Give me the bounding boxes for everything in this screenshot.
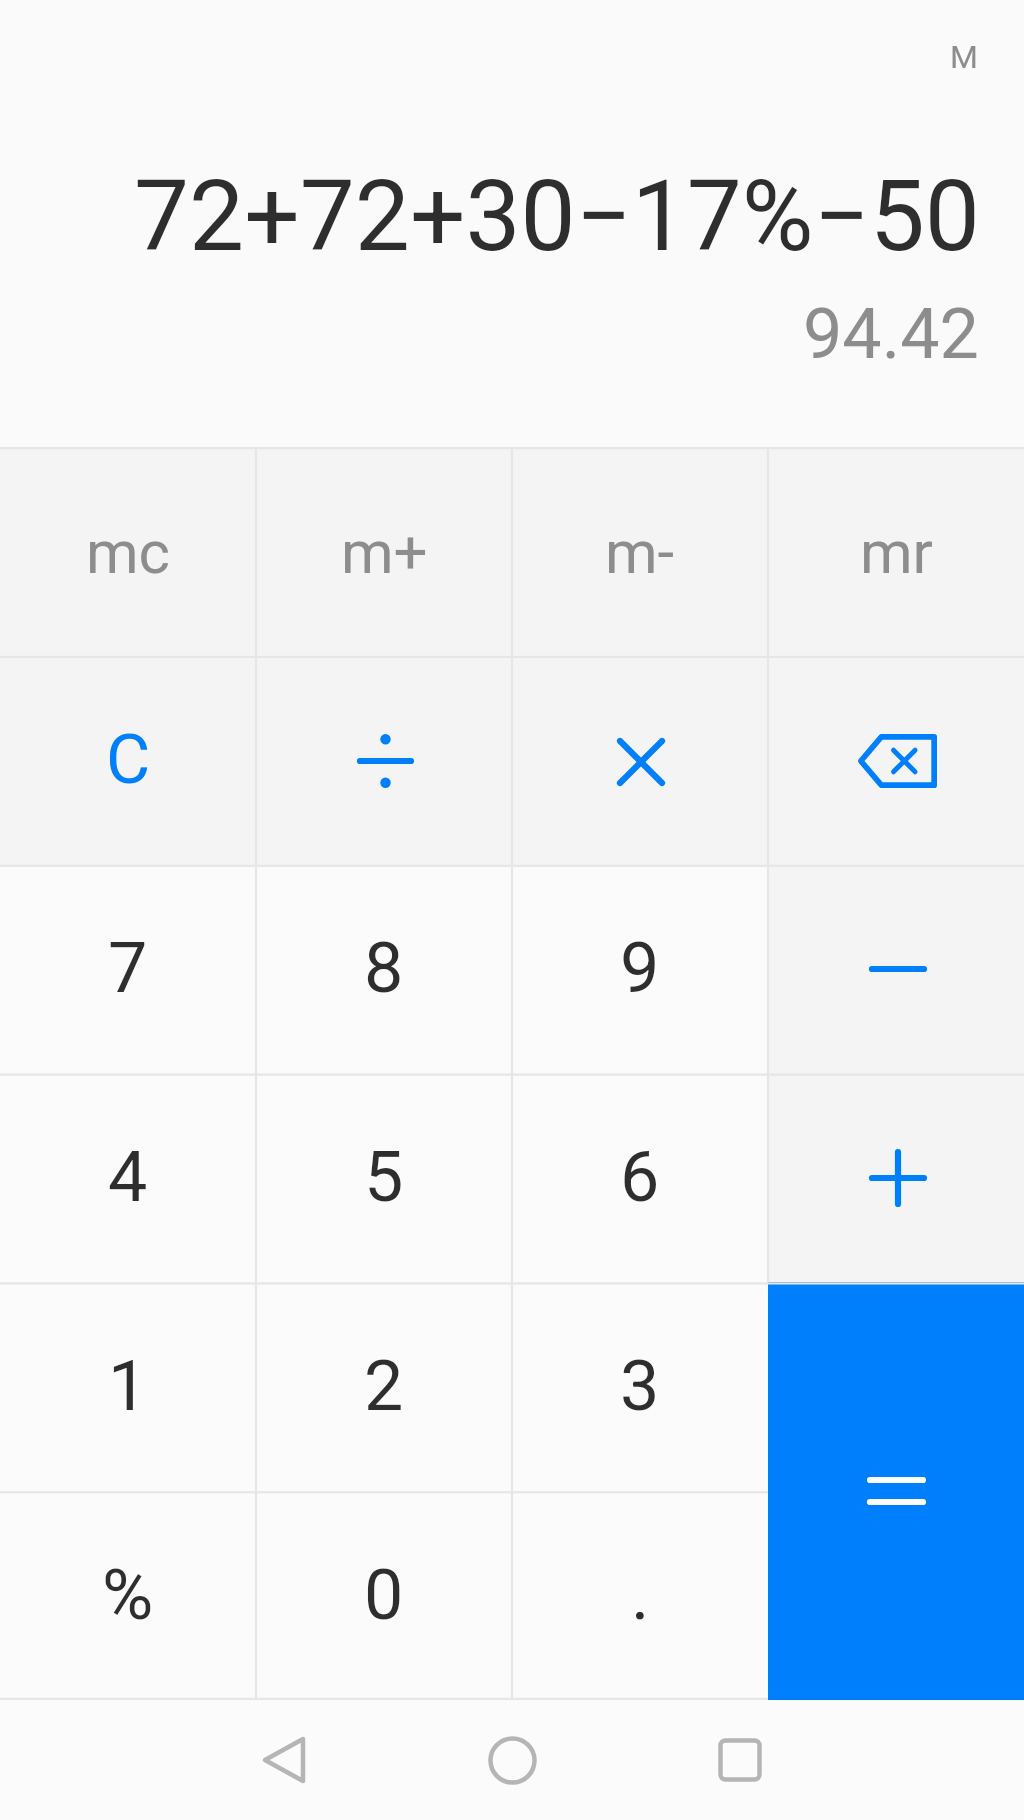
staticText: 8 — [364, 927, 404, 1009]
staticText: M — [950, 38, 978, 76]
button[interactable]: Divide — [256, 656, 512, 865]
button[interactable]: m- — [512, 447, 768, 656]
button[interactable]: 6 — [512, 1073, 768, 1282]
button[interactable]: mc — [0, 447, 256, 656]
staticText: 5 — [364, 1136, 404, 1218]
staticText: . — [631, 1554, 650, 1636]
button[interactable]: Recents — [626, 1700, 854, 1820]
staticText: mc — [86, 517, 171, 587]
button[interactable]: 8 — [256, 865, 512, 1073]
button[interactable]: 1 — [0, 1282, 256, 1491]
button[interactable]: 2 — [256, 1282, 512, 1491]
staticText: % — [102, 1554, 154, 1636]
button[interactable]: 7 — [0, 865, 256, 1073]
button[interactable]: Home — [398, 1700, 626, 1820]
staticText: 3 — [620, 1345, 660, 1427]
button[interactable]: 9 — [512, 865, 768, 1073]
button[interactable]: C — [0, 656, 256, 865]
button[interactable]: Minus — [768, 865, 1024, 1073]
button[interactable]: 0 — [256, 1491, 512, 1700]
button[interactable]: . — [512, 1491, 768, 1700]
staticText: 72+72+30−17%−50 — [134, 159, 980, 274]
button[interactable]: Equals — [768, 1282, 1024, 1700]
staticText: C — [106, 720, 151, 800]
staticText: 9 — [620, 927, 660, 1009]
staticText: 1 — [108, 1345, 148, 1427]
button[interactable]: 3 — [512, 1282, 768, 1491]
staticText: m+ — [341, 517, 428, 587]
button[interactable]: % — [0, 1491, 256, 1700]
staticText: 2 — [364, 1345, 404, 1427]
staticText: 0 — [364, 1554, 404, 1636]
button[interactable]: Back — [170, 1700, 398, 1820]
staticText: mr — [860, 517, 933, 587]
button[interactable]: 4 — [0, 1073, 256, 1282]
button[interactable]: 5 — [256, 1073, 512, 1282]
staticText: 7 — [108, 927, 148, 1009]
staticText: m- — [605, 517, 675, 587]
button[interactable]: Backspace — [768, 656, 1024, 865]
button[interactable]: Plus — [768, 1073, 1024, 1282]
staticText: 4 — [108, 1136, 148, 1218]
button[interactable]: mr — [768, 447, 1024, 656]
staticText: 94.42 — [803, 293, 979, 375]
button[interactable]: Multiply — [512, 656, 768, 865]
button[interactable]: m+ — [256, 447, 512, 656]
staticText: 6 — [620, 1136, 660, 1218]
